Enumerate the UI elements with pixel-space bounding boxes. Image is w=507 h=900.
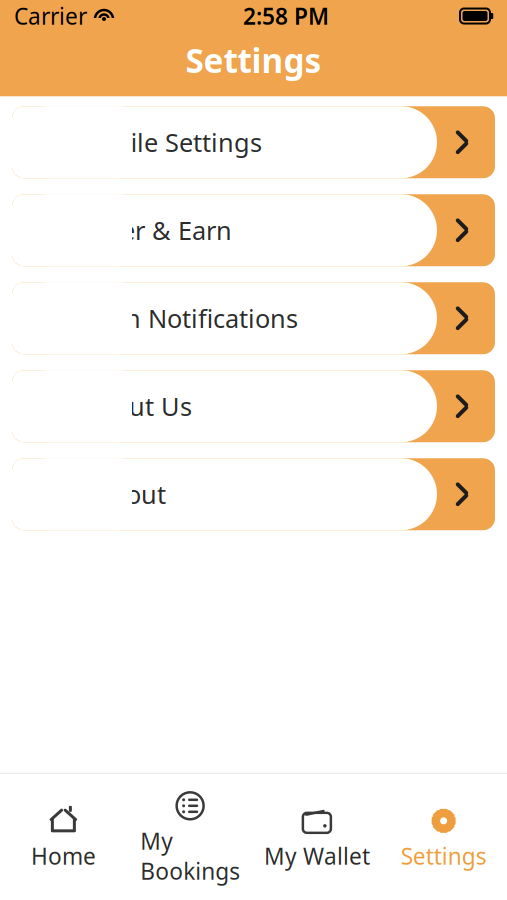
button[interactable]: Settings (380, 799, 507, 879)
staticText: Refer & Earn (82, 213, 232, 247)
staticText: About Us (82, 389, 192, 423)
button[interactable]: Refer & Earn (12, 194, 495, 266)
staticText: Settings (401, 841, 487, 871)
staticText: My Wallet (264, 841, 370, 871)
button[interactable]: My Wallet (253, 799, 380, 879)
button[interactable]: Logout (12, 458, 495, 530)
staticText: Settings (185, 38, 321, 82)
button[interactable]: Profile Settings (12, 106, 495, 178)
staticText: Home (31, 841, 96, 871)
button[interactable]: My Bookings (127, 784, 254, 894)
staticText: Carrier (14, 1, 87, 31)
button[interactable]: i (12, 370, 495, 442)
staticText: My Bookings (140, 826, 240, 886)
staticText: Profile Settings (82, 125, 262, 159)
button[interactable]: Home (0, 799, 127, 879)
staticText: 2:58 PM (243, 1, 329, 31)
staticText: Logout (82, 477, 166, 511)
button[interactable]: Push Notifications (12, 282, 495, 354)
staticText: Push Notifications (82, 301, 298, 335)
